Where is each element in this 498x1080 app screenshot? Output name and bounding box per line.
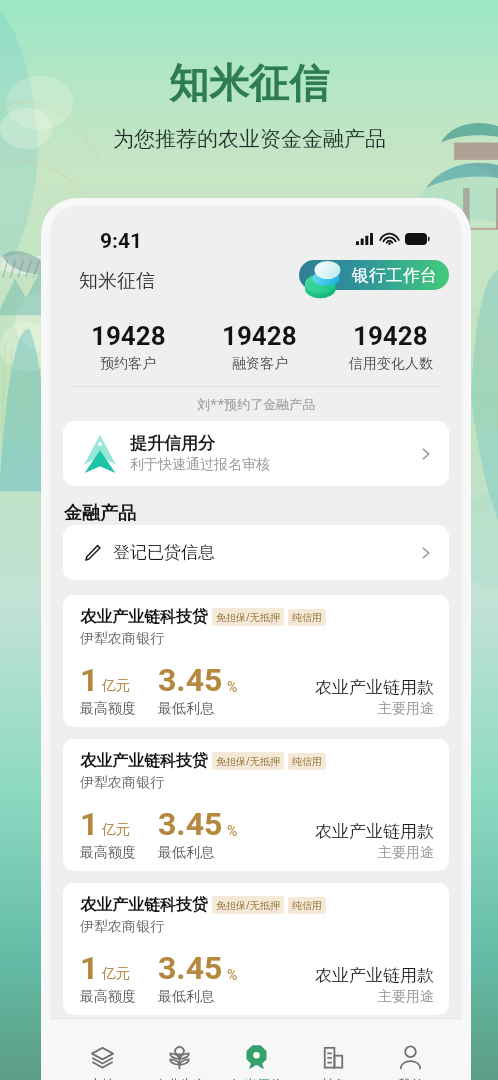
staticText: 农业产业链科技贷 — [80, 751, 208, 771]
staticText: 土地 — [89, 1076, 115, 1080]
staticText: % — [227, 679, 238, 695]
staticText: 刘**预约了金融产品 — [197, 395, 316, 413]
staticText: 伊犁农商银行 — [80, 774, 164, 792]
staticText: 3.45 — [158, 661, 223, 699]
staticText: 免担保/无抵押 — [216, 754, 280, 768]
staticText: 免担保/无抵押 — [216, 610, 280, 624]
staticText: 3.45 — [158, 949, 223, 987]
staticText: 纯信用 — [292, 755, 322, 768]
staticText: 预约客户 — [100, 355, 156, 373]
staticText: 伊犁农商银行 — [80, 630, 164, 648]
staticText: 我的 — [398, 1076, 424, 1080]
staticText: 19428 — [91, 321, 166, 351]
staticText: 纯信用 — [292, 611, 322, 624]
staticText: 亿元 — [102, 821, 130, 839]
staticText: 纯信用 — [292, 899, 322, 912]
button[interactable]: 农业生产 — [141, 1019, 218, 1080]
staticText: 免担保/无抵押 — [216, 898, 280, 912]
staticText: 1 — [80, 661, 99, 699]
staticText: 最高额度 — [80, 844, 136, 862]
staticText: 登记已贷信息 — [113, 542, 215, 563]
staticText: 融资客户 — [232, 355, 288, 373]
staticText: 最低利息 — [158, 844, 214, 862]
staticText: 农业产业链用款 — [315, 677, 434, 698]
staticText: 9:41 — [100, 229, 143, 254]
staticText: 亿元 — [102, 677, 130, 695]
staticText: 最低利息 — [158, 988, 214, 1006]
staticText: 知米征信 — [169, 58, 329, 108]
staticText: 提升信用分 — [130, 433, 215, 454]
staticText: 19428 — [353, 321, 428, 351]
staticText: 金融产品 — [64, 502, 136, 525]
staticText: 为您推荐的农业资金金融产品 — [113, 126, 386, 152]
button[interactable]: 土地 — [63, 1019, 141, 1080]
staticText: 亿元 — [102, 965, 130, 983]
staticText: 利于快速通过报名审核 — [130, 456, 270, 474]
button[interactable]: 知米征信 — [218, 1019, 295, 1080]
button[interactable]: 我的 — [372, 1019, 449, 1080]
staticText: 1 — [80, 805, 99, 843]
button[interactable]: 登记已贷信息 — [63, 525, 449, 580]
staticText: 知米征信 — [231, 1076, 283, 1080]
staticText: 知米征信 — [79, 269, 155, 293]
staticText: 主要用途 — [378, 844, 434, 862]
staticText: 最低利息 — [158, 700, 214, 718]
staticText: 信用变化人数 — [349, 355, 433, 373]
staticText: 农业产业链用款 — [315, 821, 434, 842]
staticText: 主要用途 — [378, 700, 434, 718]
button[interactable]: 农业产业链科技贷 — [63, 595, 449, 727]
staticText: 最高额度 — [80, 988, 136, 1006]
button[interactable]: 农业产业链科技贷 — [63, 883, 449, 1015]
staticText: 1 — [80, 949, 99, 987]
staticText: 村务 — [321, 1076, 347, 1080]
staticText: 主要用途 — [378, 988, 434, 1006]
staticText: 农业产业链科技贷 — [80, 895, 208, 915]
button[interactable]: 提升信用分 — [63, 421, 449, 486]
staticText: 伊犁农商银行 — [80, 918, 164, 936]
staticText: 3.45 — [158, 805, 223, 843]
button[interactable]: 银行工作台 — [299, 260, 449, 290]
staticText: 农业产业链用款 — [315, 965, 434, 986]
staticText: 农业产业链科技贷 — [80, 607, 208, 627]
staticText: 最高额度 — [80, 700, 136, 718]
staticText: 银行工作台 — [352, 265, 437, 286]
button[interactable]: 农业产业链科技贷 — [63, 739, 449, 871]
staticText: 农业生产 — [154, 1076, 206, 1080]
button[interactable]: 村务 — [295, 1019, 372, 1080]
staticText: % — [227, 823, 238, 839]
staticText: % — [227, 967, 238, 983]
staticText: 19428 — [222, 321, 297, 351]
